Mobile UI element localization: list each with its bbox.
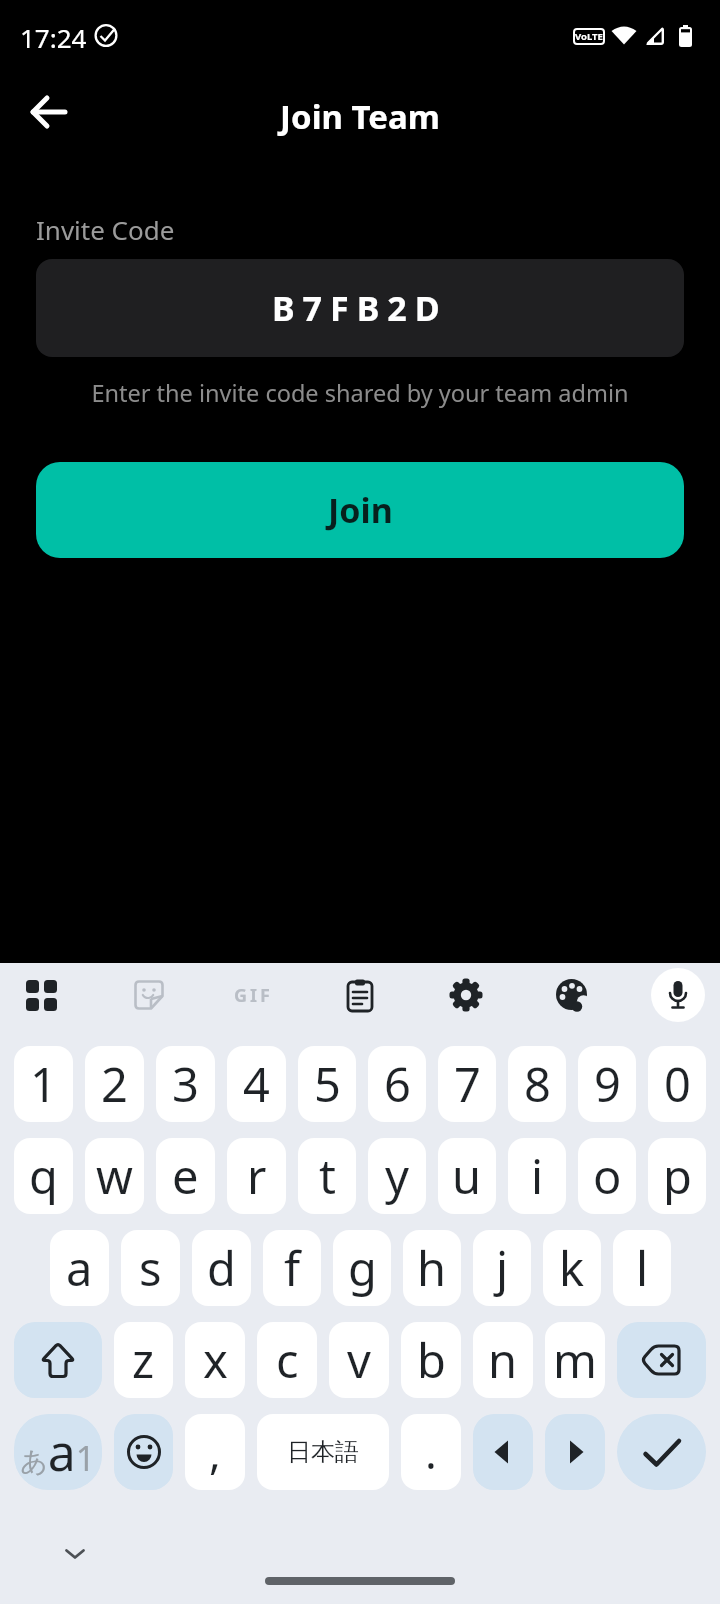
staticText: j — [496, 1236, 509, 1300]
button[interactable]: w — [85, 1138, 144, 1214]
button[interactable] — [545, 968, 599, 1022]
button[interactable] — [14, 968, 68, 1022]
staticText: VoLTE — [575, 30, 603, 43]
staticText: . — [425, 1422, 437, 1482]
staticText: 17:24 — [20, 20, 87, 55]
button[interactable]: b — [401, 1322, 461, 1398]
staticText: 3 — [172, 1052, 199, 1116]
button[interactable] — [545, 1414, 605, 1490]
staticText: r — [247, 1144, 267, 1208]
button[interactable]: . — [401, 1414, 461, 1490]
button[interactable] — [114, 1414, 173, 1490]
staticText: 5 — [314, 1052, 341, 1116]
staticText: Invite Code — [36, 212, 175, 247]
button[interactable]: 5 — [298, 1046, 356, 1122]
button[interactable]: e — [156, 1138, 215, 1214]
button[interactable]: r — [227, 1138, 286, 1214]
button[interactable]: 6 — [368, 1046, 426, 1122]
button[interactable] — [14, 1322, 102, 1398]
button[interactable] — [617, 1322, 706, 1398]
staticText: Enter the invite code shared by your tea… — [0, 377, 720, 409]
button[interactable]: 3 — [156, 1046, 215, 1122]
staticText: x — [203, 1328, 228, 1392]
staticText: 0 — [664, 1052, 691, 1116]
button[interactable]: q — [14, 1138, 73, 1214]
staticText: あa1 — [20, 1418, 96, 1486]
staticText: 8 — [524, 1052, 551, 1116]
staticText: t — [319, 1144, 336, 1208]
staticText: u — [452, 1144, 482, 1208]
staticText: 9 — [594, 1052, 621, 1116]
button[interactable]: m — [545, 1322, 605, 1398]
button[interactable]: n — [473, 1322, 533, 1398]
staticText: 4 — [243, 1052, 270, 1116]
button[interactable]: i — [508, 1138, 566, 1214]
staticText: a — [66, 1236, 93, 1300]
button[interactable]: , — [185, 1414, 245, 1490]
button[interactable]: 0 — [648, 1046, 706, 1122]
staticText: e — [172, 1144, 199, 1208]
button[interactable]: B7FB2D — [36, 259, 684, 357]
staticText: 6 — [384, 1052, 411, 1116]
button[interactable]: s — [121, 1230, 180, 1306]
button[interactable]: o — [578, 1138, 636, 1214]
button[interactable]: v — [329, 1322, 389, 1398]
staticText: i — [531, 1144, 544, 1208]
staticText: m — [553, 1328, 597, 1392]
staticText: Join — [328, 487, 393, 533]
staticText: l — [636, 1236, 649, 1300]
staticText: g — [348, 1236, 377, 1300]
button[interactable]: u — [438, 1138, 496, 1214]
button[interactable]: Join — [36, 462, 684, 558]
button[interactable]: j — [473, 1230, 531, 1306]
staticText: Join Team — [0, 94, 720, 139]
staticText: p — [663, 1144, 692, 1208]
button[interactable]: 7 — [438, 1046, 496, 1122]
staticText: q — [29, 1144, 58, 1208]
staticText: b — [417, 1328, 446, 1392]
staticText: v — [347, 1328, 371, 1392]
staticText: h — [417, 1236, 447, 1300]
button[interactable]: h — [403, 1230, 461, 1306]
staticText: 日本語 — [287, 1437, 359, 1467]
staticText: o — [593, 1144, 622, 1208]
button[interactable] — [333, 968, 387, 1022]
button[interactable]: l — [613, 1230, 671, 1306]
staticText: k — [559, 1236, 585, 1300]
button[interactable]: GIF — [226, 968, 280, 1022]
button[interactable]: 日本語 — [257, 1414, 389, 1490]
staticText: y — [385, 1144, 409, 1208]
staticText: , — [209, 1422, 221, 1482]
button[interactable] — [60, 1545, 90, 1565]
staticText: GIF — [234, 983, 273, 1008]
button[interactable]: t — [298, 1138, 356, 1214]
staticText: 7 — [454, 1052, 481, 1116]
button[interactable]: a — [50, 1230, 109, 1306]
button[interactable]: k — [543, 1230, 601, 1306]
button[interactable]: x — [185, 1322, 245, 1398]
staticText: n — [488, 1328, 518, 1392]
button[interactable] — [439, 968, 493, 1022]
button[interactable] — [473, 1414, 533, 1490]
staticText: 1 — [30, 1052, 57, 1116]
button[interactable]: 4 — [227, 1046, 286, 1122]
button[interactable]: 1 — [14, 1046, 73, 1122]
button[interactable]: d — [192, 1230, 251, 1306]
button[interactable] — [617, 1414, 706, 1490]
button[interactable]: z — [114, 1322, 173, 1398]
button[interactable]: c — [257, 1322, 317, 1398]
button[interactable]: あa1 — [14, 1414, 102, 1490]
button[interactable]: 2 — [85, 1046, 144, 1122]
button[interactable] — [31, 95, 67, 131]
staticText: c — [276, 1328, 299, 1392]
button[interactable]: 9 — [578, 1046, 636, 1122]
staticText: B7FB2D — [272, 285, 448, 331]
button[interactable] — [122, 968, 176, 1022]
button[interactable] — [651, 968, 705, 1022]
button[interactable]: 8 — [508, 1046, 566, 1122]
staticText: 2 — [101, 1052, 128, 1116]
button[interactable]: g — [333, 1230, 391, 1306]
button[interactable]: y — [368, 1138, 426, 1214]
button[interactable]: f — [263, 1230, 321, 1306]
button[interactable]: p — [648, 1138, 706, 1214]
